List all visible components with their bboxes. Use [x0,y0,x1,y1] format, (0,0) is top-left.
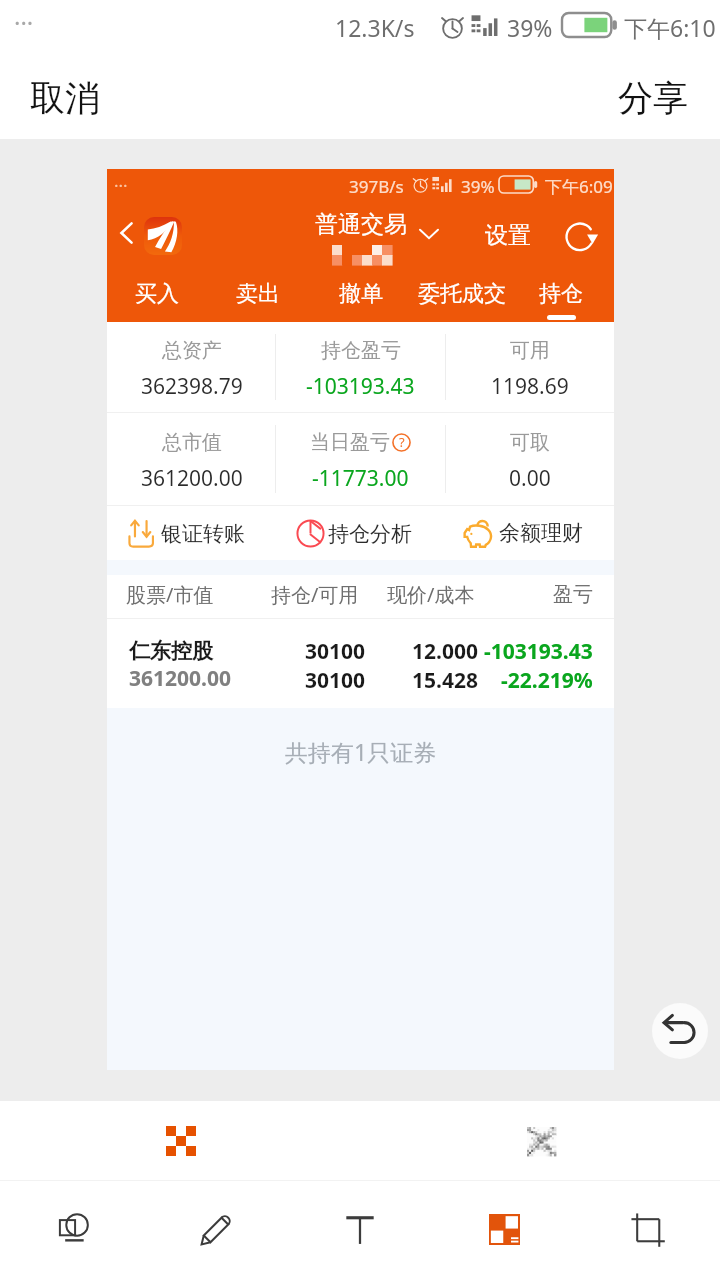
button[interactable]: 买入 [107,272,207,322]
staticText: 12.3K/s [335,12,415,43]
button[interactable]: Mosaic [460,1180,548,1279]
button[interactable]: 委托成交 [412,272,512,322]
button[interactable]: Refresh [562,219,600,257]
staticText: 持仓盈亏 [321,338,401,363]
staticText: 30100 [305,637,366,666]
staticText: 取消 [30,76,100,120]
staticText: 362398.79 [141,372,243,401]
staticText: 361200.00 [141,464,243,493]
staticText: 余额理财 [499,520,583,546]
staticText: 卖出 [236,280,280,308]
button[interactable]: 可取 [445,415,614,507]
staticText: 普通交易 [315,210,407,239]
button[interactable]: 可用 [445,324,614,414]
button[interactable]: 总市值 [107,415,276,507]
button[interactable]: Back [113,218,143,248]
staticText: 持仓分析 [328,521,412,547]
button[interactable]: 总资产 [107,324,276,414]
staticText: 可用 [510,338,550,363]
button[interactable]: 持仓 [511,272,611,322]
staticText: ··· [114,174,128,197]
staticText: 银证转账 [161,521,245,547]
staticText: 撤单 [339,280,383,308]
button[interactable]: Crop [604,1180,692,1279]
button[interactable]: Text [316,1180,404,1279]
button[interactable]: 持仓分析 [296,519,412,548]
button[interactable]: 卖出 [208,272,308,322]
staticText: 当日盈亏 [310,430,390,455]
button[interactable]: 设置 [479,217,537,254]
staticText: 361200.00 [129,664,231,693]
button[interactable]: 持仓盈亏 [276,324,445,414]
staticText: 总市值 [162,430,222,455]
staticText: 0.00 [509,464,551,493]
staticText: 仁东控股 [129,638,213,664]
button[interactable]: 仁东控股 [107,619,614,708]
staticText: 股票/市值 [126,581,214,608]
staticText: 30100 [305,666,366,695]
button[interactable]: 分享 [586,60,720,136]
staticText: 下午6:09 [545,175,613,198]
staticText: 15.428 [412,666,478,695]
staticText: 委托成交 [418,280,506,308]
button[interactable]: 撤单 [311,272,411,322]
staticText: 39% [461,175,495,198]
staticText: 持仓/可用 [271,581,359,608]
staticText: -11773.00 [312,464,409,493]
staticText: -22.219% [501,666,593,695]
staticText: 盈亏 [553,582,593,607]
staticText: -103193.43 [306,372,415,401]
staticText: 可取 [510,430,550,455]
button[interactable]: Undo [652,1003,708,1059]
staticText: 现价/成本 [387,581,475,608]
button[interactable]: 取消 [0,60,130,136]
button[interactable]: Mosaic blocks [150,1110,212,1172]
staticText: 397B/s [349,175,404,198]
button[interactable]: 当日盈亏 [276,415,445,507]
staticText: 买入 [135,280,179,308]
button[interactable]: 余额理财 [464,517,583,549]
staticText: 总资产 [162,338,222,363]
staticText: 分享 [618,76,688,120]
button[interactable]: Shapes [28,1180,116,1279]
staticText: ··· [14,6,34,39]
staticText: ? [399,433,405,451]
button[interactable]: Draw [172,1180,260,1279]
staticText: 下午6:10 [624,12,716,43]
staticText: 共持有1只证券 [285,736,437,767]
staticText: -103193.43 [484,637,593,666]
staticText: 39% [507,12,553,43]
staticText: 持仓 [539,280,583,308]
staticText: 设置 [485,221,531,250]
staticText: 1198.69 [491,372,569,401]
button[interactable]: 银证转账 [128,519,245,548]
button[interactable]: Mosaic noise [510,1110,572,1172]
staticText: 12.000 [412,637,478,666]
